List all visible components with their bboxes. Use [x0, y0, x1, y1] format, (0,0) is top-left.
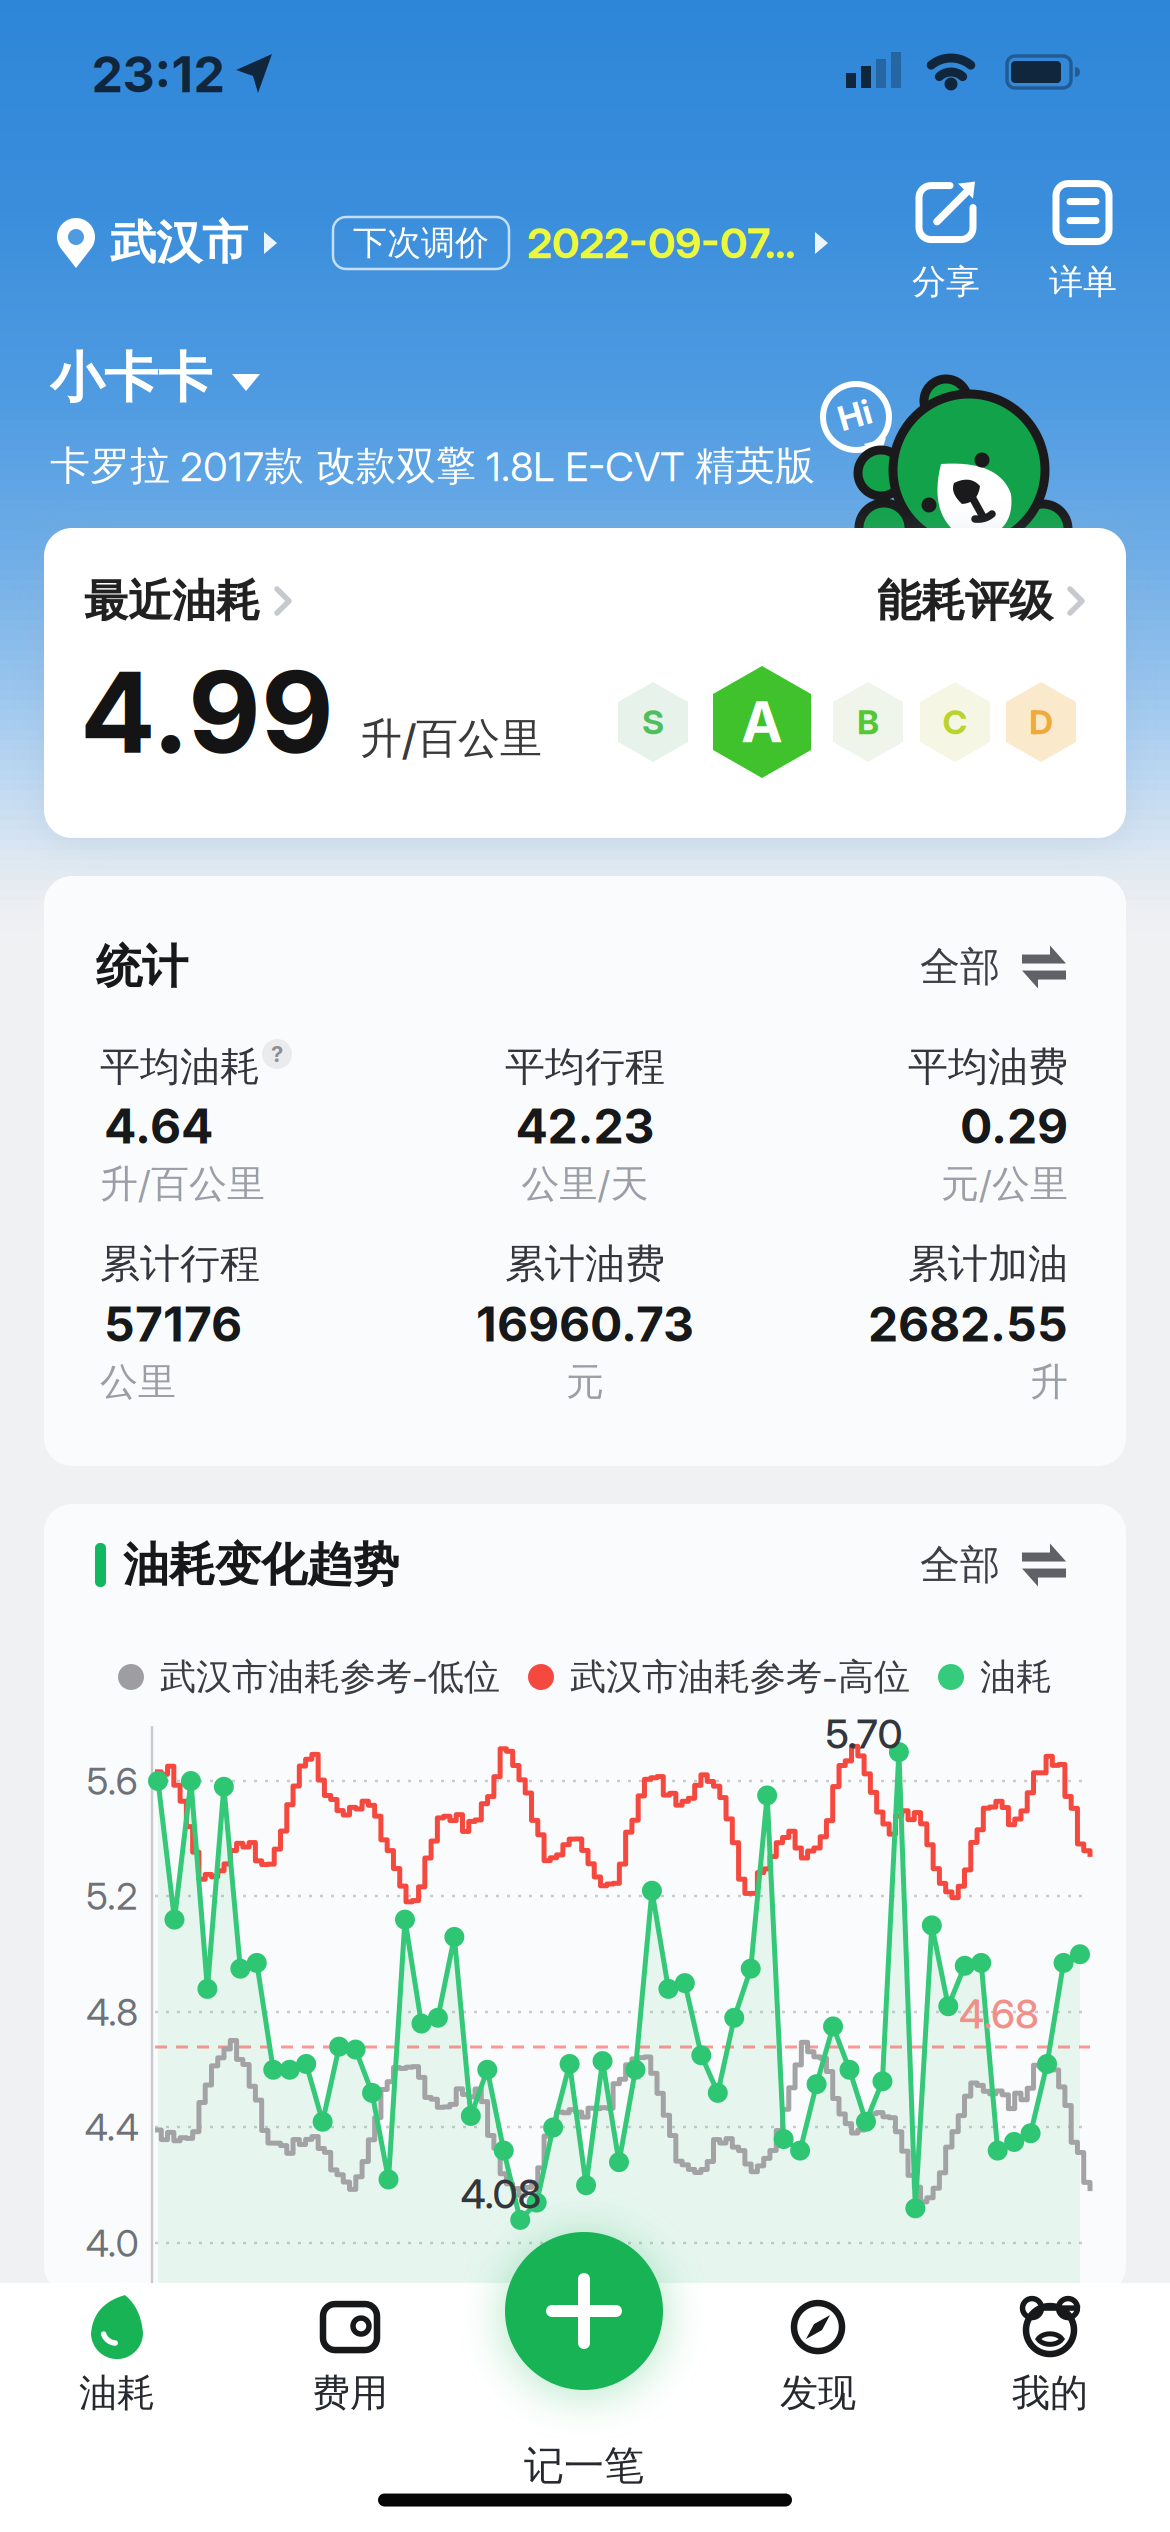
button[interactable]: 分享	[912, 181, 980, 303]
staticText: 2022-09-07...	[527, 218, 795, 268]
staticText: 武汉市油耗参考-高位	[570, 1654, 910, 1700]
staticText: 油耗	[79, 2369, 155, 2417]
staticText: 平均油费	[908, 1042, 1068, 1092]
staticText: 下次调价	[353, 222, 489, 264]
staticText: 全部	[920, 942, 1000, 992]
staticText: 卡罗拉 2017款 改款双擎 1.8L E-CVT 精英版	[50, 441, 815, 491]
staticText: 油耗	[980, 1654, 1052, 1700]
staticText: 23:12	[91, 44, 224, 104]
staticText: ?	[271, 1041, 283, 1067]
staticText: 4.08	[460, 2170, 541, 2218]
staticText: Hi	[838, 394, 872, 435]
staticText: 4.64	[104, 1097, 213, 1155]
staticText: 全部	[920, 1540, 1000, 1590]
staticText: 小卡卡	[50, 344, 212, 412]
staticText: S	[642, 701, 664, 742]
staticText: 0.29	[960, 1097, 1068, 1155]
button[interactable]: 记一笔	[524, 2441, 644, 2491]
staticText: 57176	[104, 1295, 242, 1353]
staticText: 最近油耗	[84, 573, 260, 629]
staticText: 平均油耗	[100, 1042, 260, 1092]
staticText: 公里	[100, 1358, 176, 1406]
staticText: 4.8	[86, 1989, 138, 2035]
button[interactable]: 费用	[312, 2295, 388, 2417]
staticText: 武汉市	[110, 214, 248, 272]
staticText: 5.2	[86, 1873, 138, 1919]
button[interactable]: 最近油耗	[84, 573, 293, 629]
button[interactable]: 小卡卡	[50, 344, 260, 412]
staticText: D	[1029, 701, 1053, 742]
staticText: 5.70	[825, 1710, 902, 1758]
staticText: 4.99	[80, 644, 334, 780]
staticText: B	[857, 701, 879, 742]
staticText: 公里/天	[521, 1160, 648, 1208]
staticText: 发现	[780, 2369, 856, 2417]
staticText: 5.6	[86, 1758, 137, 1804]
staticText: A	[741, 688, 783, 756]
button[interactable]	[504, 2231, 664, 2391]
staticText: 详单	[1049, 261, 1117, 303]
staticText: 升	[1030, 1358, 1068, 1406]
staticText: 我的	[1012, 2369, 1088, 2417]
button[interactable]: 详单	[1049, 181, 1117, 303]
staticText: 2682.55	[868, 1295, 1068, 1353]
staticText: 分享	[912, 261, 980, 303]
staticText: 元	[566, 1358, 604, 1406]
staticText: 费用	[312, 2369, 388, 2417]
staticText: 统计	[96, 938, 188, 996]
staticText: 累计加油	[908, 1239, 1068, 1289]
button[interactable]: 发现	[780, 2295, 856, 2417]
staticText: 升/百公里	[100, 1160, 265, 1208]
staticText: 4.4	[84, 2104, 139, 2150]
staticText: 累计行程	[100, 1239, 260, 1289]
staticText: 4.0	[85, 2220, 138, 2266]
staticText: 升/百公里	[360, 712, 542, 765]
button[interactable]: 能耗评级	[877, 573, 1086, 629]
staticText: 元/公里	[941, 1160, 1068, 1208]
staticText: 油耗变化趋势	[123, 1536, 399, 1594]
staticText: 16960.73	[476, 1295, 694, 1353]
button[interactable]: 武汉市	[56, 214, 279, 272]
staticText: 能耗评级	[877, 573, 1053, 629]
staticText: 记一笔	[524, 2441, 644, 2491]
button[interactable]: 我的	[1012, 2295, 1088, 2417]
button[interactable]: 全部	[920, 1540, 1066, 1590]
staticText: 武汉市油耗参考-低位	[160, 1654, 500, 1700]
button[interactable]: 全部	[920, 942, 1066, 992]
staticText: 4.68	[959, 1990, 1039, 2038]
staticText: 平均行程	[505, 1042, 665, 1092]
staticText: 累计油费	[505, 1239, 665, 1289]
staticText: 42.23	[515, 1097, 654, 1155]
button[interactable]: 下次调价	[333, 217, 830, 269]
button[interactable]: 油耗	[79, 2295, 155, 2417]
staticText: C	[942, 701, 967, 742]
